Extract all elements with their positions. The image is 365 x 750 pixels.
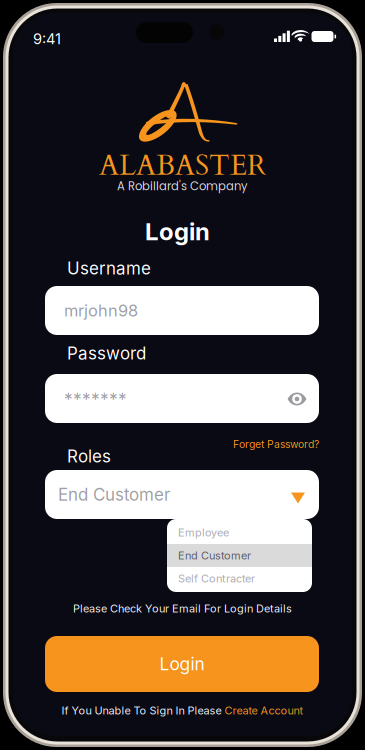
staticText: Roles (67, 446, 111, 466)
staticText: mrjohn98 (64, 301, 138, 320)
button[interactable]: Self Contracter (167, 567, 312, 590)
staticText: Login (145, 217, 210, 246)
staticText: End Customer (58, 484, 170, 505)
staticText: ******* (64, 389, 127, 410)
staticText: Self Contracter (178, 572, 255, 585)
staticText: Employee (178, 526, 229, 539)
staticText: ALABASTER (99, 147, 266, 185)
button[interactable]: Create Account (224, 704, 303, 717)
staticText: Username (67, 258, 151, 278)
staticText: Password (67, 343, 146, 363)
staticText: 9:41 (33, 30, 61, 48)
staticText: Forget Password? (233, 438, 319, 451)
staticText: If You Unable To Sign In Please (61, 704, 224, 717)
staticText: A Robillard's Company (117, 178, 248, 194)
button[interactable]: ******* (45, 374, 319, 423)
button[interactable]: mrjohn98 (45, 286, 319, 335)
button[interactable]: Login (45, 636, 319, 692)
staticText: Please Check Your Email For Login Detail… (73, 602, 292, 615)
button[interactable]: Employee (167, 521, 312, 544)
button[interactable]: Forget Password? (233, 438, 319, 451)
staticText: End Customer (178, 549, 251, 562)
staticText: Login (159, 653, 204, 674)
button[interactable]: Show password (287, 390, 307, 408)
button[interactable]: End Customer (45, 470, 319, 519)
button[interactable]: End Customer (167, 544, 312, 567)
staticText: Create Account (224, 704, 303, 717)
